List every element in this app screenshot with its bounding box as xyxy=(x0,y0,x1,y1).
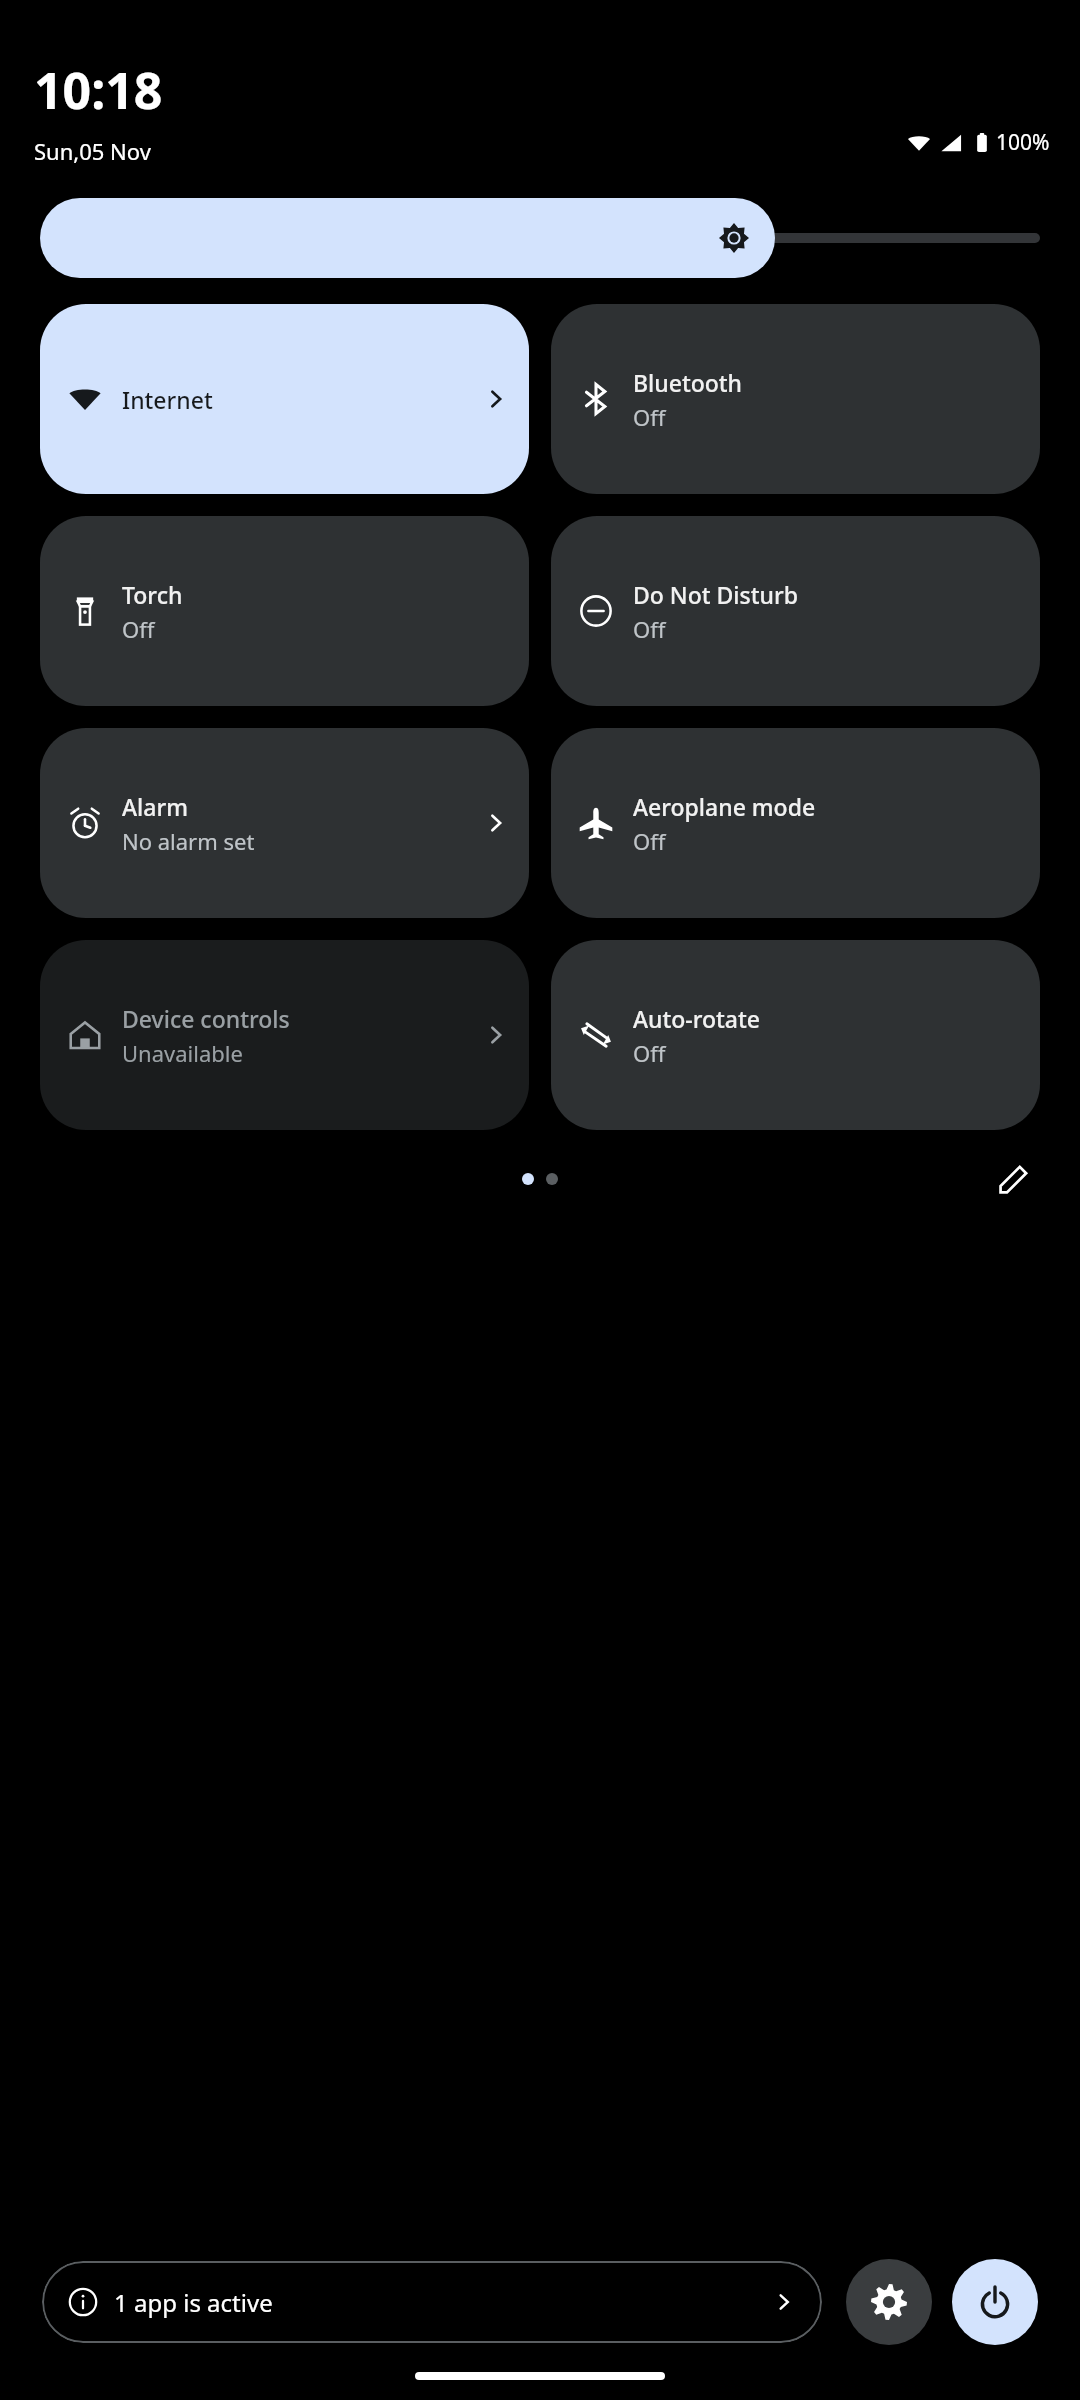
staticText: Aeroplane mode xyxy=(633,791,816,822)
staticText: Device controls xyxy=(122,1003,290,1034)
staticText: Do Not Disturb xyxy=(633,579,798,610)
staticText: Off xyxy=(633,826,666,856)
button[interactable]: Brightness xyxy=(40,198,1040,278)
button[interactable]: Auto-rotate xyxy=(551,940,1040,1130)
staticText: Torch xyxy=(122,579,183,610)
button[interactable]: Bluetooth xyxy=(551,304,1040,494)
staticText: Internet xyxy=(122,384,213,415)
button[interactable]: Edit tiles xyxy=(988,1153,1040,1205)
staticText: Off xyxy=(633,402,666,432)
button[interactable]: Alarm xyxy=(40,728,529,918)
staticText: Auto-rotate xyxy=(633,1003,761,1034)
button[interactable]: Device controls xyxy=(40,940,529,1130)
staticText: Sun,05 Nov xyxy=(34,136,151,166)
button[interactable]: Settings xyxy=(846,2259,932,2345)
staticText: Bluetooth xyxy=(633,367,743,398)
staticText: 1 app is active xyxy=(114,2286,772,2319)
button[interactable]: Do Not Disturb xyxy=(551,516,1040,706)
staticText: No alarm set xyxy=(122,826,255,856)
staticText: 100% xyxy=(996,128,1050,157)
button[interactable]: Power xyxy=(952,2259,1038,2345)
button[interactable]: 1 app is active xyxy=(42,2261,822,2343)
staticText: Off xyxy=(633,614,666,644)
staticText: Off xyxy=(122,614,155,644)
button[interactable]: Torch xyxy=(40,516,529,706)
staticText: Alarm xyxy=(122,791,188,822)
button[interactable]: Aeroplane mode xyxy=(551,728,1040,918)
staticText: 10:18 xyxy=(34,56,163,124)
staticText: Off xyxy=(633,1038,666,1068)
button[interactable]: Internet xyxy=(40,304,529,494)
staticText: Unavailable xyxy=(122,1038,243,1068)
